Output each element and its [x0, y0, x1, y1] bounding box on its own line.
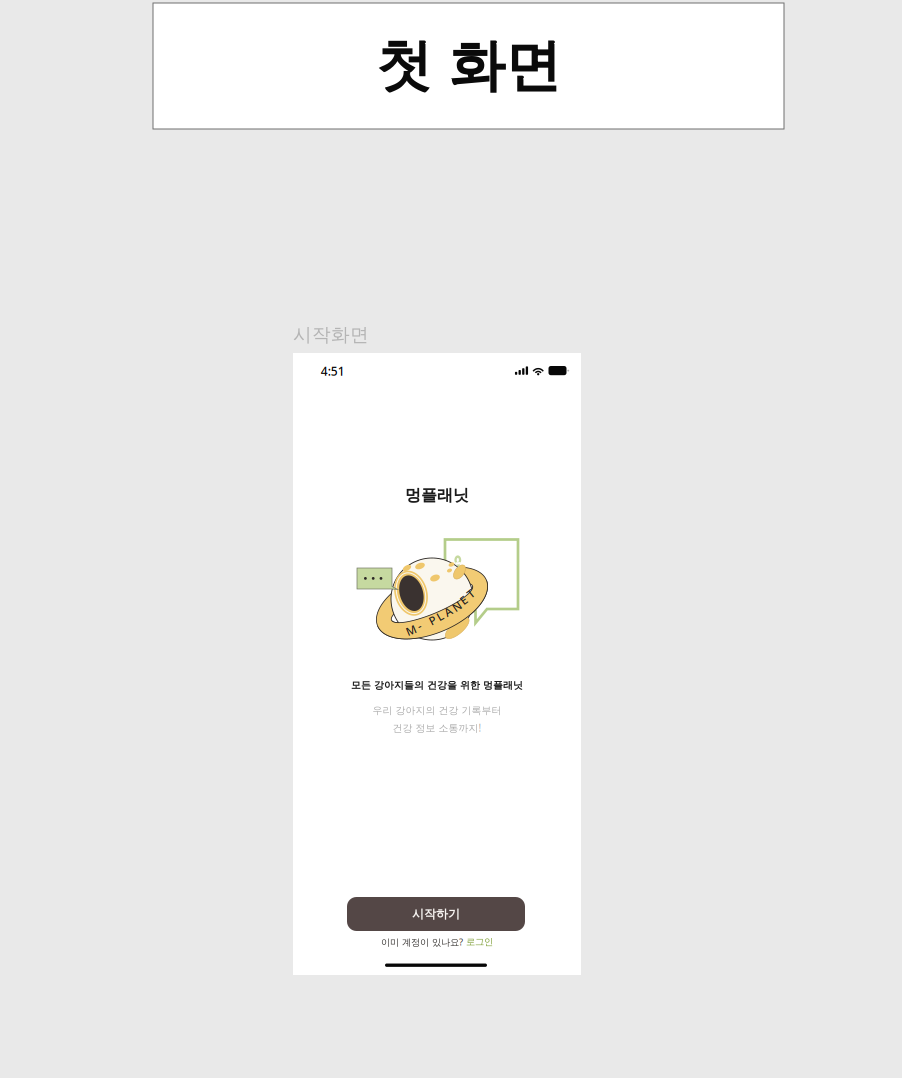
staticText: P [429, 612, 436, 628]
staticText: M [406, 622, 416, 638]
staticText: 시작화면 [293, 323, 369, 346]
staticText: 첫 화면 [376, 31, 561, 101]
staticText: T [467, 586, 473, 601]
staticText: E [460, 592, 466, 608]
staticText: 로그인 [466, 936, 493, 948]
button[interactable]: 이미 계정이 있나요? [293, 936, 581, 948]
staticText: 건강 정보 소통까지! [392, 721, 481, 735]
staticText: A [444, 604, 451, 619]
staticText: 모든 강아지들의 건강을 위한 멍플래닛 [351, 679, 523, 691]
staticText: N [452, 598, 461, 614]
staticText: 시작하기 [412, 906, 460, 921]
staticText: 우리 강아지의 건강 기록부터 [372, 704, 501, 717]
staticText: - [417, 618, 421, 633]
button[interactable]: 시작하기 [347, 897, 525, 931]
staticText: L [437, 608, 443, 624]
staticText: 멍플래닛 [405, 485, 469, 505]
staticText: 이미 계정이 있나요? [381, 936, 463, 948]
staticText: 4:51 [321, 363, 345, 379]
